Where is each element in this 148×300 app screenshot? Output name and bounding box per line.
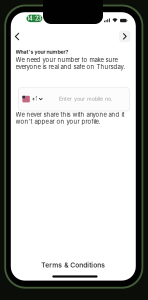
button[interactable]: Back bbox=[12, 30, 22, 43]
staticText: everyone is real and safe on Thursday. bbox=[16, 63, 126, 71]
button[interactable]: Country code bbox=[18, 87, 45, 111]
staticText: +1 bbox=[31, 96, 37, 103]
staticText: Terms & Conditions bbox=[41, 261, 105, 269]
staticText: We never share this with anyone and it bbox=[16, 111, 125, 118]
staticText: 14:23 bbox=[27, 15, 42, 22]
staticText: Enter your mobile no. bbox=[59, 96, 113, 102]
staticText: What's your number? bbox=[16, 49, 69, 55]
button[interactable]: Terms & Conditions bbox=[11, 259, 136, 270]
button[interactable]: Continue bbox=[119, 31, 130, 42]
staticText: won't appear on your profile. bbox=[16, 118, 101, 125]
staticText: We need your number to make sure bbox=[16, 56, 118, 64]
